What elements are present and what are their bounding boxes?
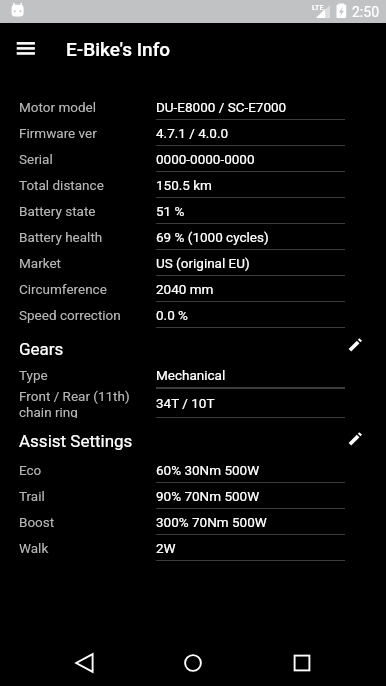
button[interactable]: Circumference xyxy=(0,276,386,302)
staticText: E-Bike's Info xyxy=(66,38,171,60)
staticText: 60% 30Nm 500W xyxy=(156,462,260,478)
staticText: Type xyxy=(19,367,48,383)
staticText: 90% 70Nm 500W xyxy=(156,488,260,504)
button[interactable]: Battery health xyxy=(0,224,386,250)
staticText: Trail xyxy=(19,488,45,504)
staticText: 0000-0000-0000 xyxy=(156,151,255,167)
button[interactable]: Market xyxy=(0,250,386,276)
button[interactable]: Serial xyxy=(0,146,386,172)
staticText: Walk xyxy=(19,540,49,556)
staticText: Eco xyxy=(19,462,42,478)
staticText: Firmware ver xyxy=(19,125,97,141)
staticText: Circumference xyxy=(19,281,107,297)
button[interactable]: Back xyxy=(60,638,108,686)
staticText: DU-E8000 / SC-E7000 xyxy=(156,99,287,115)
button[interactable]: Front / Rear (11th) xyxy=(0,388,386,418)
staticText: Front / Rear (11th) xyxy=(19,388,130,404)
staticText: 150.5 km xyxy=(156,177,212,193)
button[interactable]: Type xyxy=(0,362,386,388)
staticText: Total distance xyxy=(19,177,104,193)
staticText: Serial xyxy=(19,151,53,167)
staticText: 2W xyxy=(156,540,176,556)
staticText: Speed correction xyxy=(19,307,121,323)
staticText: 4.7.1 / 4.0.0 xyxy=(156,125,229,141)
staticText: 34T / 10T xyxy=(156,395,215,411)
button[interactable]: Walk xyxy=(0,535,386,561)
staticText: 300% 70Nm 500W xyxy=(156,514,267,530)
staticText: chain ring xyxy=(19,404,78,418)
staticText: 0.0 % xyxy=(156,307,188,323)
staticText: Boost xyxy=(19,514,55,530)
staticText: Mechanical xyxy=(156,367,226,383)
staticText: 2040 mm xyxy=(156,281,214,297)
button[interactable]: Battery state xyxy=(0,198,386,224)
staticText: Assist Settings xyxy=(19,431,133,451)
staticText: Motor model xyxy=(19,99,96,115)
button[interactable]: Total distance xyxy=(0,172,386,198)
staticText: Gears xyxy=(19,339,64,359)
button[interactable]: Edit Assist Settings xyxy=(342,426,368,452)
staticText: US (original EU) xyxy=(156,255,250,271)
button[interactable]: Recent apps xyxy=(278,638,326,686)
button[interactable]: Eco xyxy=(0,457,386,483)
staticText: LTE xyxy=(312,3,324,11)
button[interactable]: Firmware ver xyxy=(0,120,386,146)
button[interactable]: Open navigation menu xyxy=(8,40,40,72)
button[interactable]: Trail xyxy=(0,483,386,509)
staticText: 2:50 xyxy=(352,4,379,20)
button[interactable]: Boost xyxy=(0,509,386,535)
staticText: 51 % xyxy=(156,203,185,219)
button[interactable]: Motor model xyxy=(0,94,386,120)
button[interactable]: Edit Gears xyxy=(342,332,368,358)
button[interactable]: Home xyxy=(169,638,217,686)
staticText: Battery health xyxy=(19,229,103,245)
staticText: Market xyxy=(19,255,61,271)
staticText: 69 % (1000 cycles) xyxy=(156,229,269,245)
button[interactable]: Speed correction xyxy=(0,302,386,328)
staticText: Battery state xyxy=(19,203,96,219)
